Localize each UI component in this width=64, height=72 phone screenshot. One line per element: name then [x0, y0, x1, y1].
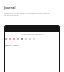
staticText: Jan 01, 2024 — [5, 43, 19, 46]
staticText: How are you feeling? — [4, 33, 60, 36]
button[interactable]: How are you feeling? — [4, 25, 60, 72]
staticText: Journal — [4, 6, 16, 10]
staticText: Capture your daily thoughts and mood in … — [4, 11, 50, 17]
